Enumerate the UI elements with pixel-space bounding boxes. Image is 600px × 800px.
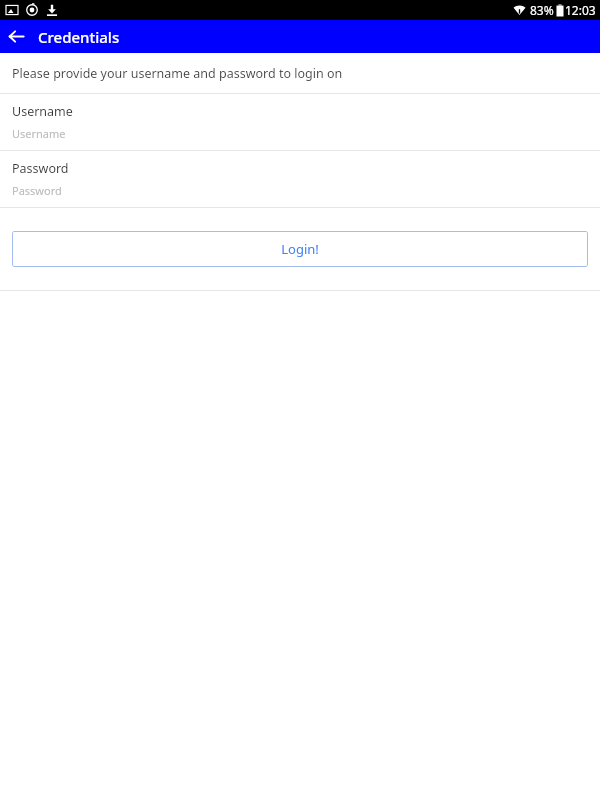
button[interactable]: Username xyxy=(0,94,600,150)
staticText: Username xyxy=(12,126,66,141)
staticText: 83% xyxy=(530,2,554,18)
staticText: Password xyxy=(12,183,62,198)
staticText: 12:03 xyxy=(565,2,596,18)
button[interactable]: Password xyxy=(0,151,600,207)
button[interactable]: Login! xyxy=(12,231,588,267)
staticText: Password xyxy=(12,160,69,177)
staticText: Login! xyxy=(281,240,319,258)
button[interactable]: Navigate up xyxy=(0,20,33,53)
staticText: Credentials xyxy=(38,27,120,47)
staticText: Please provide your username and passwor… xyxy=(12,65,343,82)
staticText: Username xyxy=(12,103,73,120)
